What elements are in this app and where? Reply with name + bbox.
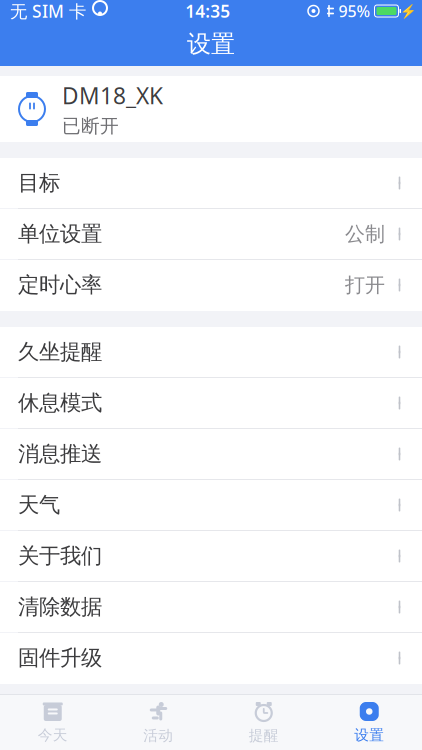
- button[interactable]: 消息推送: [0, 429, 422, 480]
- staticText: 久坐提醒: [18, 339, 102, 365]
- button[interactable]: 天气: [0, 480, 422, 531]
- staticText: 清除数据: [18, 594, 102, 620]
- button[interactable]: DM18_XK: [0, 76, 422, 142]
- staticText: DM18_XK: [62, 80, 163, 111]
- button[interactable]: 清除数据: [0, 582, 422, 633]
- button[interactable]: 关于我们: [0, 531, 422, 582]
- button[interactable]: 久坐提醒: [0, 327, 422, 378]
- staticText: 消息推送: [18, 441, 102, 467]
- staticText: 今天: [38, 726, 68, 744]
- staticText: 14:35: [185, 0, 230, 22]
- button[interactable]: 设置: [316, 695, 422, 750]
- staticText: 设置: [354, 726, 384, 744]
- staticText: 打开: [345, 273, 385, 297]
- button[interactable]: 固件升级: [0, 633, 422, 684]
- button[interactable]: 单位设置: [0, 209, 422, 260]
- staticText: 无 SIM 卡: [10, 0, 86, 22]
- staticText: 95%: [338, 0, 370, 22]
- button[interactable]: 目标: [0, 158, 422, 209]
- staticText: 已断开: [62, 115, 119, 137]
- button[interactable]: 提醒: [211, 695, 316, 750]
- button[interactable]: 休息模式: [0, 378, 422, 429]
- staticText: ⚡: [399, 3, 416, 19]
- button[interactable]: 今天: [0, 695, 105, 750]
- staticText: 目标: [18, 170, 60, 196]
- staticText: 关于我们: [18, 543, 102, 569]
- staticText: 公制: [345, 222, 385, 246]
- staticText: 活动: [143, 726, 173, 744]
- staticText: 休息模式: [18, 390, 102, 416]
- staticText: 天气: [18, 492, 60, 518]
- staticText: 定时心率: [18, 272, 102, 298]
- staticText: 固件升级: [18, 645, 102, 671]
- button[interactable]: 定时心率: [0, 260, 422, 311]
- staticText: 单位设置: [18, 221, 102, 247]
- staticText: 设置: [187, 29, 235, 59]
- button[interactable]: 活动: [105, 695, 211, 750]
- staticText: 提醒: [249, 726, 279, 744]
